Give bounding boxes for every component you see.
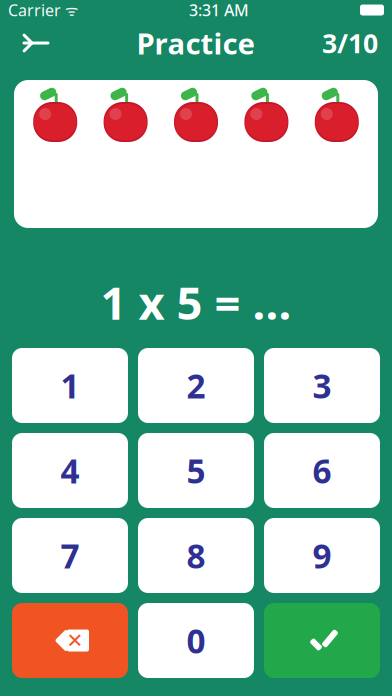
staticText: 6 — [312, 448, 331, 493]
button[interactable]: 2 — [138, 348, 254, 423]
staticText: 7 — [60, 533, 79, 578]
staticText: 0 — [186, 618, 205, 663]
button[interactable]: 1 — [12, 348, 128, 423]
staticText: ✕ — [66, 629, 83, 652]
button[interactable]: 3 — [264, 348, 380, 423]
staticText: 8 — [186, 533, 205, 578]
button[interactable]: 5 — [138, 433, 254, 508]
staticText: 4 — [60, 448, 79, 493]
staticText: 1 x 5 = ... — [100, 272, 291, 332]
button[interactable]: 4 — [12, 433, 128, 508]
button[interactable]: Submit answer — [264, 603, 380, 678]
staticText: 3/10 — [322, 25, 378, 61]
staticText: Carrier — [8, 0, 61, 21]
button[interactable]: 7 — [12, 518, 128, 593]
staticText: Practice — [136, 23, 255, 62]
button[interactable]: 9 — [264, 518, 380, 593]
staticText: 3:31 AM — [189, 0, 249, 21]
staticText: 2 — [186, 363, 205, 408]
staticText: 1 — [60, 363, 79, 408]
button[interactable]: 6 — [264, 433, 380, 508]
button[interactable]: Delete — [12, 603, 128, 678]
staticText: 9 — [312, 533, 331, 578]
button[interactable]: Back — [14, 25, 58, 61]
staticText: 5 — [186, 448, 205, 493]
staticText: 3 — [312, 363, 331, 408]
button[interactable]: 8 — [138, 518, 254, 593]
button[interactable]: 0 — [138, 603, 254, 678]
staticText: ᯤ — [61, 0, 78, 20]
